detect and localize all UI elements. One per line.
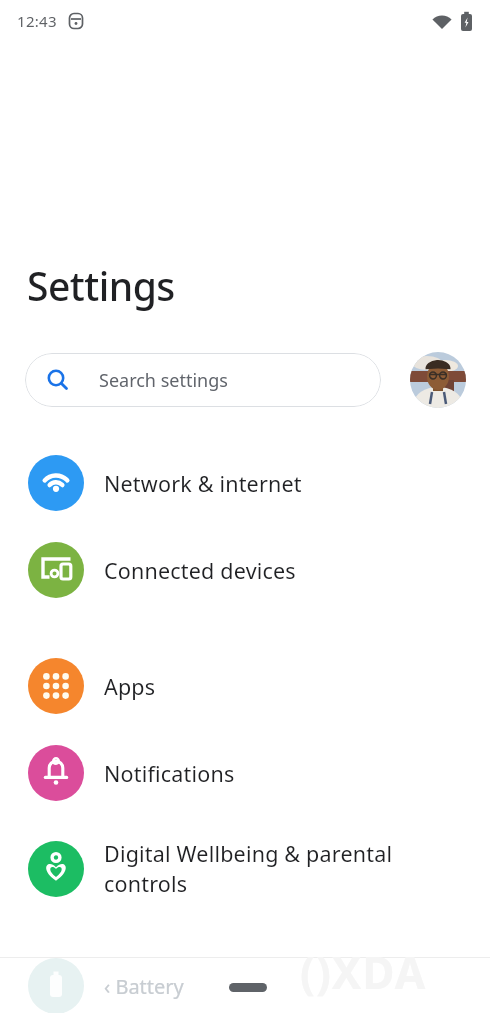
staticText: Connected devices	[104, 556, 296, 585]
button[interactable]: ‹ Battery	[0, 958, 490, 1013]
staticText: ‹ Battery	[104, 973, 184, 1000]
staticText: Digital Wellbeing & parental controls	[104, 839, 393, 898]
staticText: Notifications	[104, 759, 235, 788]
button[interactable]: Apps	[0, 658, 490, 714]
staticText: Settings	[27, 259, 175, 312]
button[interactable]	[410, 352, 466, 408]
staticText: Apps	[104, 672, 156, 701]
button[interactable]: Notifications	[0, 745, 490, 801]
button[interactable]: Digital Wellbeing & parental controls	[0, 839, 490, 898]
button[interactable]	[229, 983, 267, 992]
staticText: ()XDA	[300, 942, 427, 1002]
staticText: Search settings	[99, 368, 228, 393]
button[interactable]: Network & internet	[0, 455, 490, 511]
button[interactable]: Search settings	[25, 353, 381, 407]
staticText: Network & internet	[104, 469, 302, 498]
staticText: 12:43	[17, 11, 57, 31]
button[interactable]: Connected devices	[0, 542, 490, 598]
